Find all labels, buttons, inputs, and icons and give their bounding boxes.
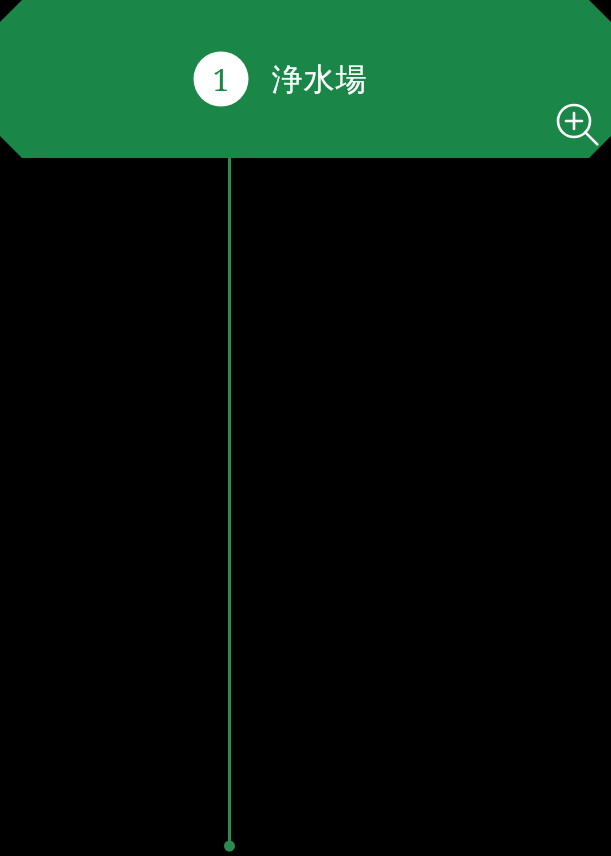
button[interactable]: Zoom in — [550, 97, 598, 145]
button[interactable]: 浄水場 — [0, 0, 611, 158]
